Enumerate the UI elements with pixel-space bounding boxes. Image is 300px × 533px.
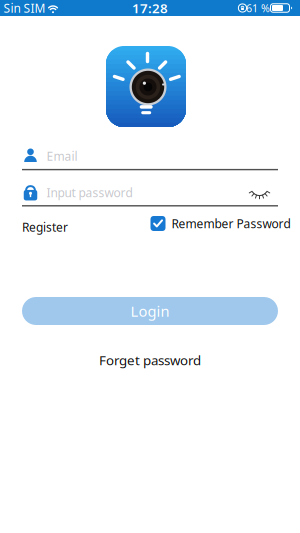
button[interactable]: Input password	[22, 176, 278, 210]
button[interactable]: Show password	[246, 184, 272, 202]
button[interactable]: Email	[22, 141, 278, 173]
staticText: Input password	[46, 184, 132, 200]
staticText: Sin SIM	[3, 0, 45, 16]
staticText: Remember Password	[171, 215, 290, 231]
staticText: Forget password	[99, 351, 201, 369]
button[interactable]: Register	[22, 219, 102, 235]
button[interactable]: Forget password	[99, 351, 201, 369]
button[interactable]: Login	[22, 297, 278, 325]
staticText: 61 %	[246, 1, 270, 15]
staticText: Login	[130, 301, 169, 321]
staticText: Register	[22, 219, 68, 235]
staticText: 17:28	[132, 0, 168, 17]
button[interactable]: Remember Password	[150, 215, 300, 231]
staticText: Email	[46, 148, 77, 164]
